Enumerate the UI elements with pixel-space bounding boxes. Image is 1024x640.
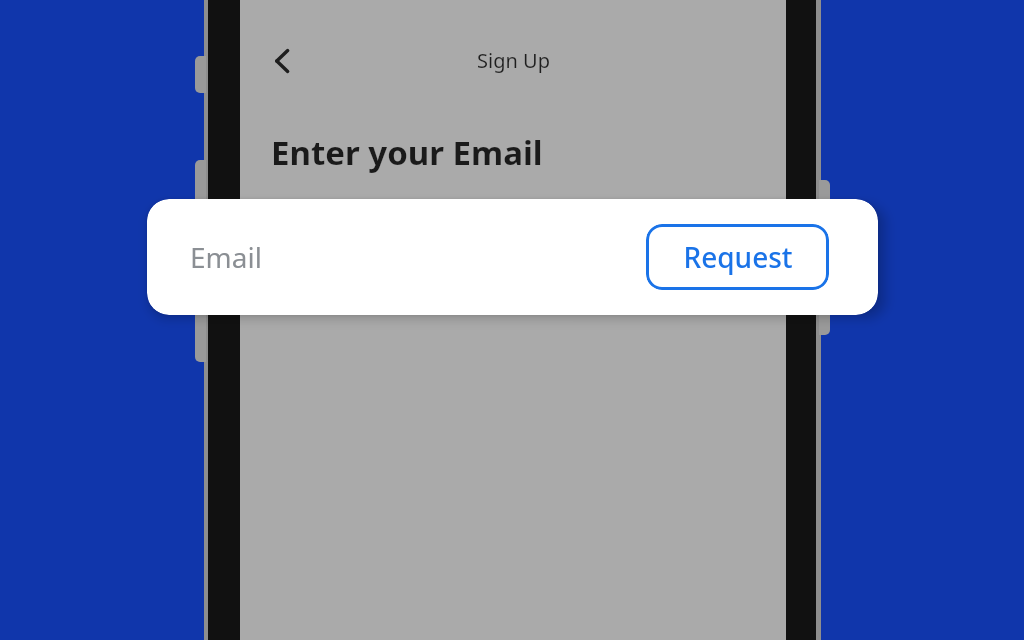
staticText: Request [683, 238, 793, 276]
staticText: Sign Up [477, 47, 550, 74]
button[interactable]: Back [256, 34, 310, 88]
staticText: Email [190, 238, 262, 276]
staticText: Enter your Email [271, 130, 543, 175]
button[interactable]: Request [646, 224, 829, 290]
